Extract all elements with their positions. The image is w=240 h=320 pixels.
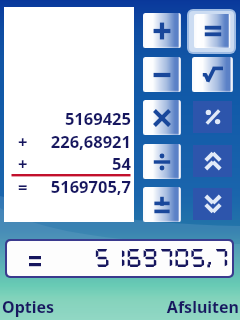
staticText: 226,68921 — [4, 130, 131, 152]
button[interactable]: Square root — [192, 57, 233, 92]
button[interactable]: Minus — [143, 57, 181, 92]
button[interactable]: Plus minus — [143, 187, 181, 222]
button[interactable]: Afsluiten — [150, 296, 240, 318]
button[interactable]: Scroll down — [193, 188, 232, 220]
staticText: = — [18, 175, 28, 197]
staticText: 54 — [4, 152, 131, 174]
staticText: 5169425 — [4, 107, 131, 129]
button[interactable]: Opties — [0, 296, 80, 318]
button[interactable]: Plus — [143, 13, 181, 48]
staticText: + — [18, 130, 28, 152]
button[interactable] — [7, 241, 232, 276]
button[interactable]: Percent — [193, 101, 232, 133]
button[interactable]: Divide — [143, 144, 181, 179]
staticText: 5169705,7 — [4, 175, 131, 197]
staticText: Opties — [2, 296, 55, 318]
button[interactable]: Scroll up — [193, 145, 232, 177]
staticText: Afsluiten — [150, 296, 239, 318]
staticText: + — [18, 152, 28, 174]
button[interactable]: Multiply — [143, 100, 181, 135]
button[interactable]: Equals — [194, 14, 231, 48]
